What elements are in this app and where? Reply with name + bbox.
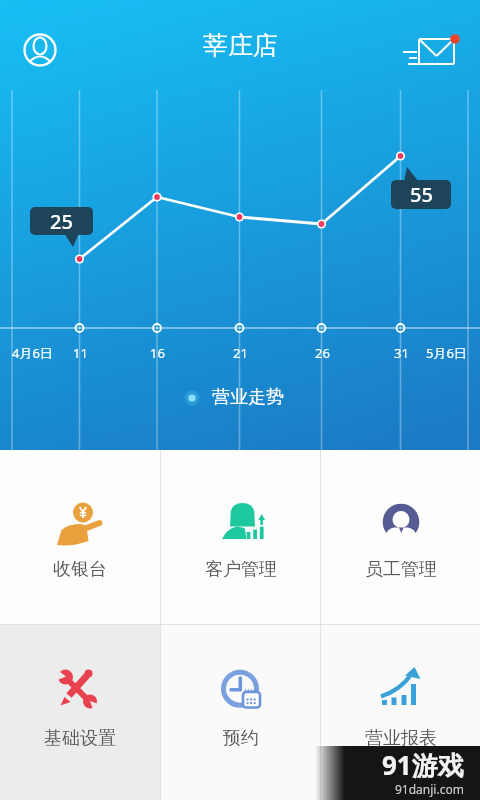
button[interactable] — [22, 32, 58, 68]
staticText: 25 — [50, 208, 73, 235]
button[interactable]: 预约 — [161, 625, 320, 800]
staticText: 16 — [150, 344, 165, 362]
staticText: 91danji.com — [395, 781, 464, 797]
staticText: 4月6日 — [12, 344, 53, 362]
staticText: 莘庄店 — [203, 30, 278, 61]
staticText: 收银台 — [53, 558, 107, 581]
staticText: 营业报表 — [365, 727, 437, 750]
staticText: 营业走势 — [212, 386, 284, 409]
staticText: 31 — [394, 344, 409, 362]
staticText: 客户管理 — [205, 558, 277, 581]
button[interactable]: 91游戏 — [315, 746, 480, 800]
button[interactable]: 营业报表 — [321, 625, 480, 800]
staticText: 21 — [233, 344, 248, 362]
button[interactable]: 客户管理 — [161, 450, 320, 624]
staticText: 11 — [73, 344, 88, 362]
button[interactable]: 收银台 — [0, 450, 160, 624]
staticText: 91游戏 — [382, 747, 464, 783]
button[interactable]: 员工管理 — [321, 450, 480, 624]
staticText: 员工管理 — [365, 558, 437, 581]
staticText: 26 — [315, 344, 330, 362]
staticText: 预约 — [223, 727, 259, 750]
button[interactable] — [396, 30, 464, 70]
staticText: 55 — [410, 181, 433, 208]
staticText: 5月6日 — [426, 344, 467, 362]
button[interactable]: 基础设置 — [0, 625, 160, 800]
staticText: 基础设置 — [44, 727, 116, 750]
